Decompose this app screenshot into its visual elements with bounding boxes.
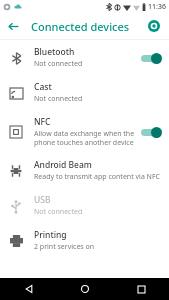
staticText: Cast [34,81,52,93]
button[interactable]: Printing [0,223,169,258]
staticText: Not connected [34,94,83,104]
staticText: Android Beam [34,159,92,171]
button[interactable]: Toggle [139,125,163,139]
button[interactable]: Home [57,278,113,300]
button[interactable]: Bluetooth [0,40,169,75]
staticText: 11:36 [148,2,166,12]
button[interactable]: USB [0,188,169,223]
button[interactable]: Back [0,13,26,39]
button[interactable]: Android Beam [0,153,169,188]
button[interactable]: Toggle [139,51,163,65]
staticText: Ready to transmit app content via NFC [34,172,160,182]
staticText: Not connected [34,207,83,217]
staticText: Allow data exchange when the phone touch… [34,129,135,147]
staticText: Printing [34,229,67,241]
button[interactable]: NFC [0,110,169,153]
staticText: Bluetooth [34,46,75,58]
button[interactable]: Cast [0,75,169,110]
staticText: NFC [34,116,51,128]
button[interactable]: Back [0,278,57,300]
staticText: Not connected [34,59,83,69]
button[interactable]: Help [141,13,167,39]
staticText: USB [34,194,51,206]
button[interactable]: Recent apps [113,278,169,300]
staticText: 2 print services on [34,242,95,252]
staticText: Connected devices [31,19,130,34]
